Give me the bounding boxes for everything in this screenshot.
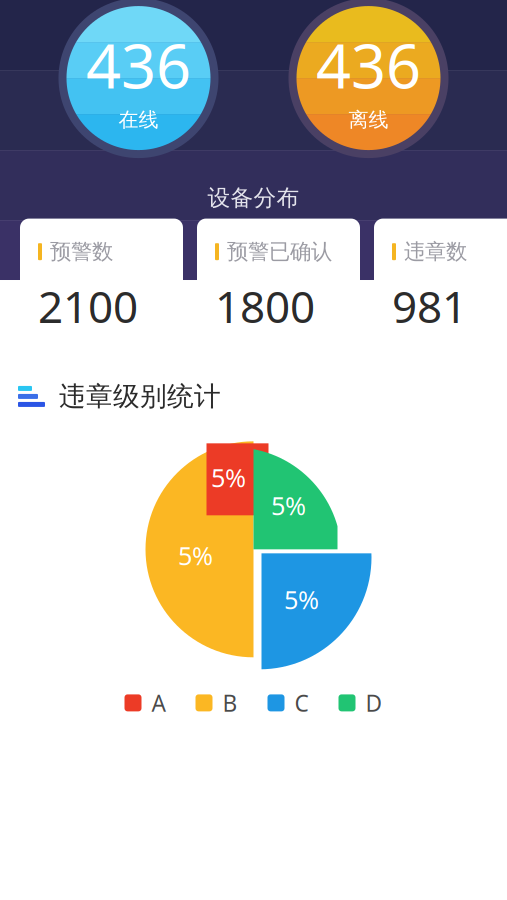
- staticText: 违章数: [404, 239, 467, 265]
- staticText: 在线: [118, 107, 158, 132]
- staticText: 预警数: [50, 239, 113, 265]
- staticText: D: [365, 688, 382, 718]
- staticText: 离线: [348, 107, 388, 132]
- staticText: 2100: [38, 277, 138, 335]
- staticText: 436: [86, 24, 191, 105]
- button[interactable]: 预警数: [20, 219, 183, 320]
- staticText: 5%: [284, 582, 319, 616]
- staticText: 违章级别统计: [59, 380, 221, 413]
- button[interactable]: 预警已确认: [197, 219, 360, 320]
- staticText: 设备分布: [207, 184, 299, 212]
- staticText: 5%: [271, 488, 306, 522]
- staticText: 981: [392, 277, 467, 335]
- staticText: B: [222, 688, 237, 718]
- staticText: 预警已确认: [227, 239, 332, 265]
- staticText: C: [294, 688, 308, 718]
- staticText: 5%: [211, 460, 246, 494]
- staticText: A: [151, 688, 165, 718]
- staticText: 5%: [178, 538, 213, 572]
- button[interactable]: 违章数: [374, 219, 507, 320]
- staticText: 1800: [215, 277, 315, 335]
- staticText: 436: [316, 24, 421, 105]
